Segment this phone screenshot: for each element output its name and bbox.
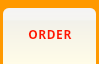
button[interactable]: ORDER [0,0,99,64]
staticText: ORDER [28,26,72,42]
